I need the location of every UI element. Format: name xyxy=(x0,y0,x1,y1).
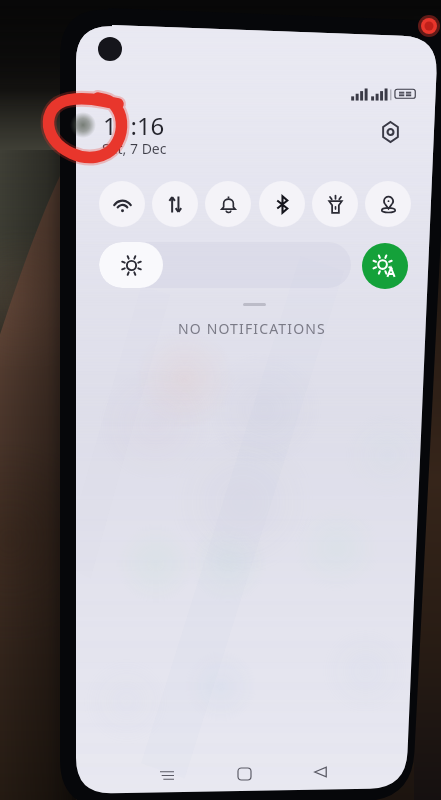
button[interactable]: Bluetooth xyxy=(259,181,305,227)
button[interactable]: Flashlight xyxy=(312,181,358,227)
button[interactable]: Back xyxy=(303,755,337,789)
button[interactable]: Brightness xyxy=(99,242,351,288)
button[interactable]: Home xyxy=(227,757,261,791)
button[interactable]: Ring xyxy=(205,181,251,227)
button[interactable]: Location xyxy=(365,181,411,227)
staticText: 11:16 xyxy=(103,109,165,142)
button[interactable]: Wi-Fi xyxy=(99,181,145,227)
button[interactable]: Auto brightness xyxy=(362,243,408,289)
staticText: Sat, 7 Dec xyxy=(102,139,167,158)
button[interactable]: Settings xyxy=(376,118,404,146)
staticText: NO NOTIFICATIONS xyxy=(178,319,326,338)
button[interactable]: Recents xyxy=(150,758,184,792)
button[interactable]: Mobile data xyxy=(152,181,198,227)
